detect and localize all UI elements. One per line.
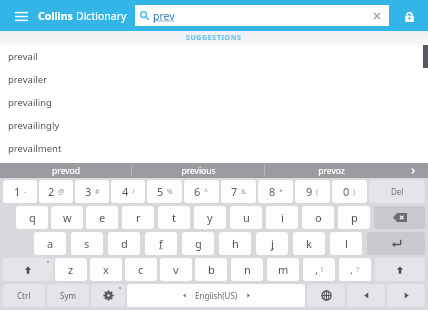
- button[interactable]: Space: [127, 284, 305, 307]
- staticText: j: [271, 236, 274, 251]
- button[interactable]: r: [122, 206, 154, 229]
- staticText: 3: [85, 184, 92, 199]
- button[interactable]: prev: [135, 5, 389, 26]
- button[interactable]: prevailment: [0, 137, 428, 160]
- button[interactable]: prevod: [0, 163, 132, 178]
- button[interactable]: p: [338, 206, 370, 229]
- button[interactable]: a: [34, 232, 66, 255]
- button[interactable]: previous: [132, 163, 265, 178]
- staticText: prevailing: [8, 96, 52, 109]
- staticText: prevail: [8, 50, 38, 63]
- staticText: 4: [122, 184, 129, 199]
- button[interactable]: Del: [369, 180, 425, 203]
- button[interactable]: Change language: [307, 284, 345, 307]
- staticText: i: [281, 210, 284, 225]
- staticText: (: [316, 187, 319, 197]
- button[interactable]: prevailer: [0, 68, 428, 91]
- button[interactable]: e: [86, 206, 118, 229]
- button[interactable]: x: [90, 258, 122, 281]
- button[interactable]: b: [195, 258, 227, 281]
- staticText: 8: [269, 184, 276, 199]
- button[interactable]: h: [219, 232, 251, 255]
- button[interactable]: More suggestions: [398, 163, 428, 178]
- button[interactable]: 4: [111, 180, 145, 203]
- staticText: w: [63, 210, 72, 225]
- button[interactable]: t: [158, 206, 190, 229]
- staticText: a: [47, 236, 54, 251]
- staticText: q: [29, 210, 36, 225]
- button[interactable]: Sym: [47, 284, 89, 307]
- button[interactable]: ,: [303, 258, 335, 281]
- staticText: 6: [194, 184, 201, 199]
- button[interactable]: Enter: [367, 232, 425, 255]
- button[interactable]: prevailing: [0, 91, 428, 114]
- button[interactable]: prevoz: [265, 163, 398, 178]
- button[interactable]: 0: [332, 180, 367, 203]
- button[interactable]: g: [182, 232, 214, 255]
- staticText: 7: [231, 184, 238, 199]
- button[interactable]: Right: [387, 284, 425, 307]
- staticText: b: [208, 262, 215, 277]
- staticText: @: [58, 187, 65, 197]
- staticText: r: [136, 210, 141, 225]
- button[interactable]: o: [302, 206, 334, 229]
- staticText: *: [279, 187, 283, 197]
- button[interactable]: 6: [184, 180, 219, 203]
- button[interactable]: n: [231, 258, 263, 281]
- button[interactable]: prevail: [0, 45, 428, 68]
- button[interactable]: l: [330, 232, 362, 255]
- staticText: 1: [14, 184, 21, 199]
- button[interactable]: .: [339, 258, 371, 281]
- button[interactable]: Shift: [3, 258, 53, 281]
- button[interactable]: k: [293, 232, 325, 255]
- staticText: h: [232, 236, 239, 251]
- button[interactable]: 1: [3, 180, 37, 203]
- button[interactable]: Settings: [91, 284, 125, 307]
- button[interactable]: 7: [221, 180, 256, 203]
- button[interactable]: s: [71, 232, 103, 255]
- staticText: %: [167, 187, 173, 197]
- staticText: m: [278, 262, 289, 277]
- button[interactable]: 9: [295, 180, 330, 203]
- button[interactable]: z: [55, 258, 87, 281]
- button[interactable]: j: [256, 232, 288, 255]
- staticText: &: [241, 187, 247, 197]
- staticText: s: [84, 236, 90, 251]
- button[interactable]: 2: [39, 180, 73, 203]
- button[interactable]: q: [16, 206, 48, 229]
- button[interactable]: Shift: [375, 258, 425, 281]
- button[interactable]: Backspace: [374, 206, 425, 229]
- button[interactable]: m: [267, 258, 299, 281]
- button[interactable]: Clear: [370, 9, 384, 23]
- staticText: English(US): [195, 290, 238, 301]
- button[interactable]: 5: [147, 180, 182, 203]
- staticText: l: [345, 236, 348, 251]
- button[interactable]: w: [51, 206, 83, 229]
- staticText: prevailingly: [8, 119, 60, 132]
- staticText: ): [353, 187, 356, 197]
- button[interactable]: Ctrl: [3, 284, 45, 307]
- staticText: Ctrl: [17, 290, 31, 301]
- staticText: Del: [391, 186, 404, 197]
- button[interactable]: u: [230, 206, 262, 229]
- button[interactable]: i: [266, 206, 298, 229]
- staticText: prevoz: [318, 165, 345, 177]
- staticText: d: [121, 236, 128, 251]
- button[interactable]: d: [108, 232, 140, 255]
- button[interactable]: 8: [258, 180, 293, 203]
- staticText: prevod: [52, 165, 80, 177]
- button[interactable]: y: [194, 206, 226, 229]
- staticText: 0: [343, 184, 350, 199]
- staticText: x: [103, 262, 109, 277]
- button[interactable]: Menu: [8, 3, 34, 29]
- button[interactable]: Left: [347, 284, 385, 307]
- staticText: o: [315, 210, 322, 225]
- button[interactable]: f: [145, 232, 177, 255]
- button[interactable]: 3: [75, 180, 109, 203]
- button[interactable]: Lock: [398, 5, 420, 27]
- button[interactable]: Collins: [38, 9, 127, 23]
- staticText: k: [306, 236, 312, 251]
- button[interactable]: prevailingly: [0, 114, 428, 137]
- button[interactable]: c: [125, 258, 157, 281]
- button[interactable]: v: [160, 258, 192, 281]
